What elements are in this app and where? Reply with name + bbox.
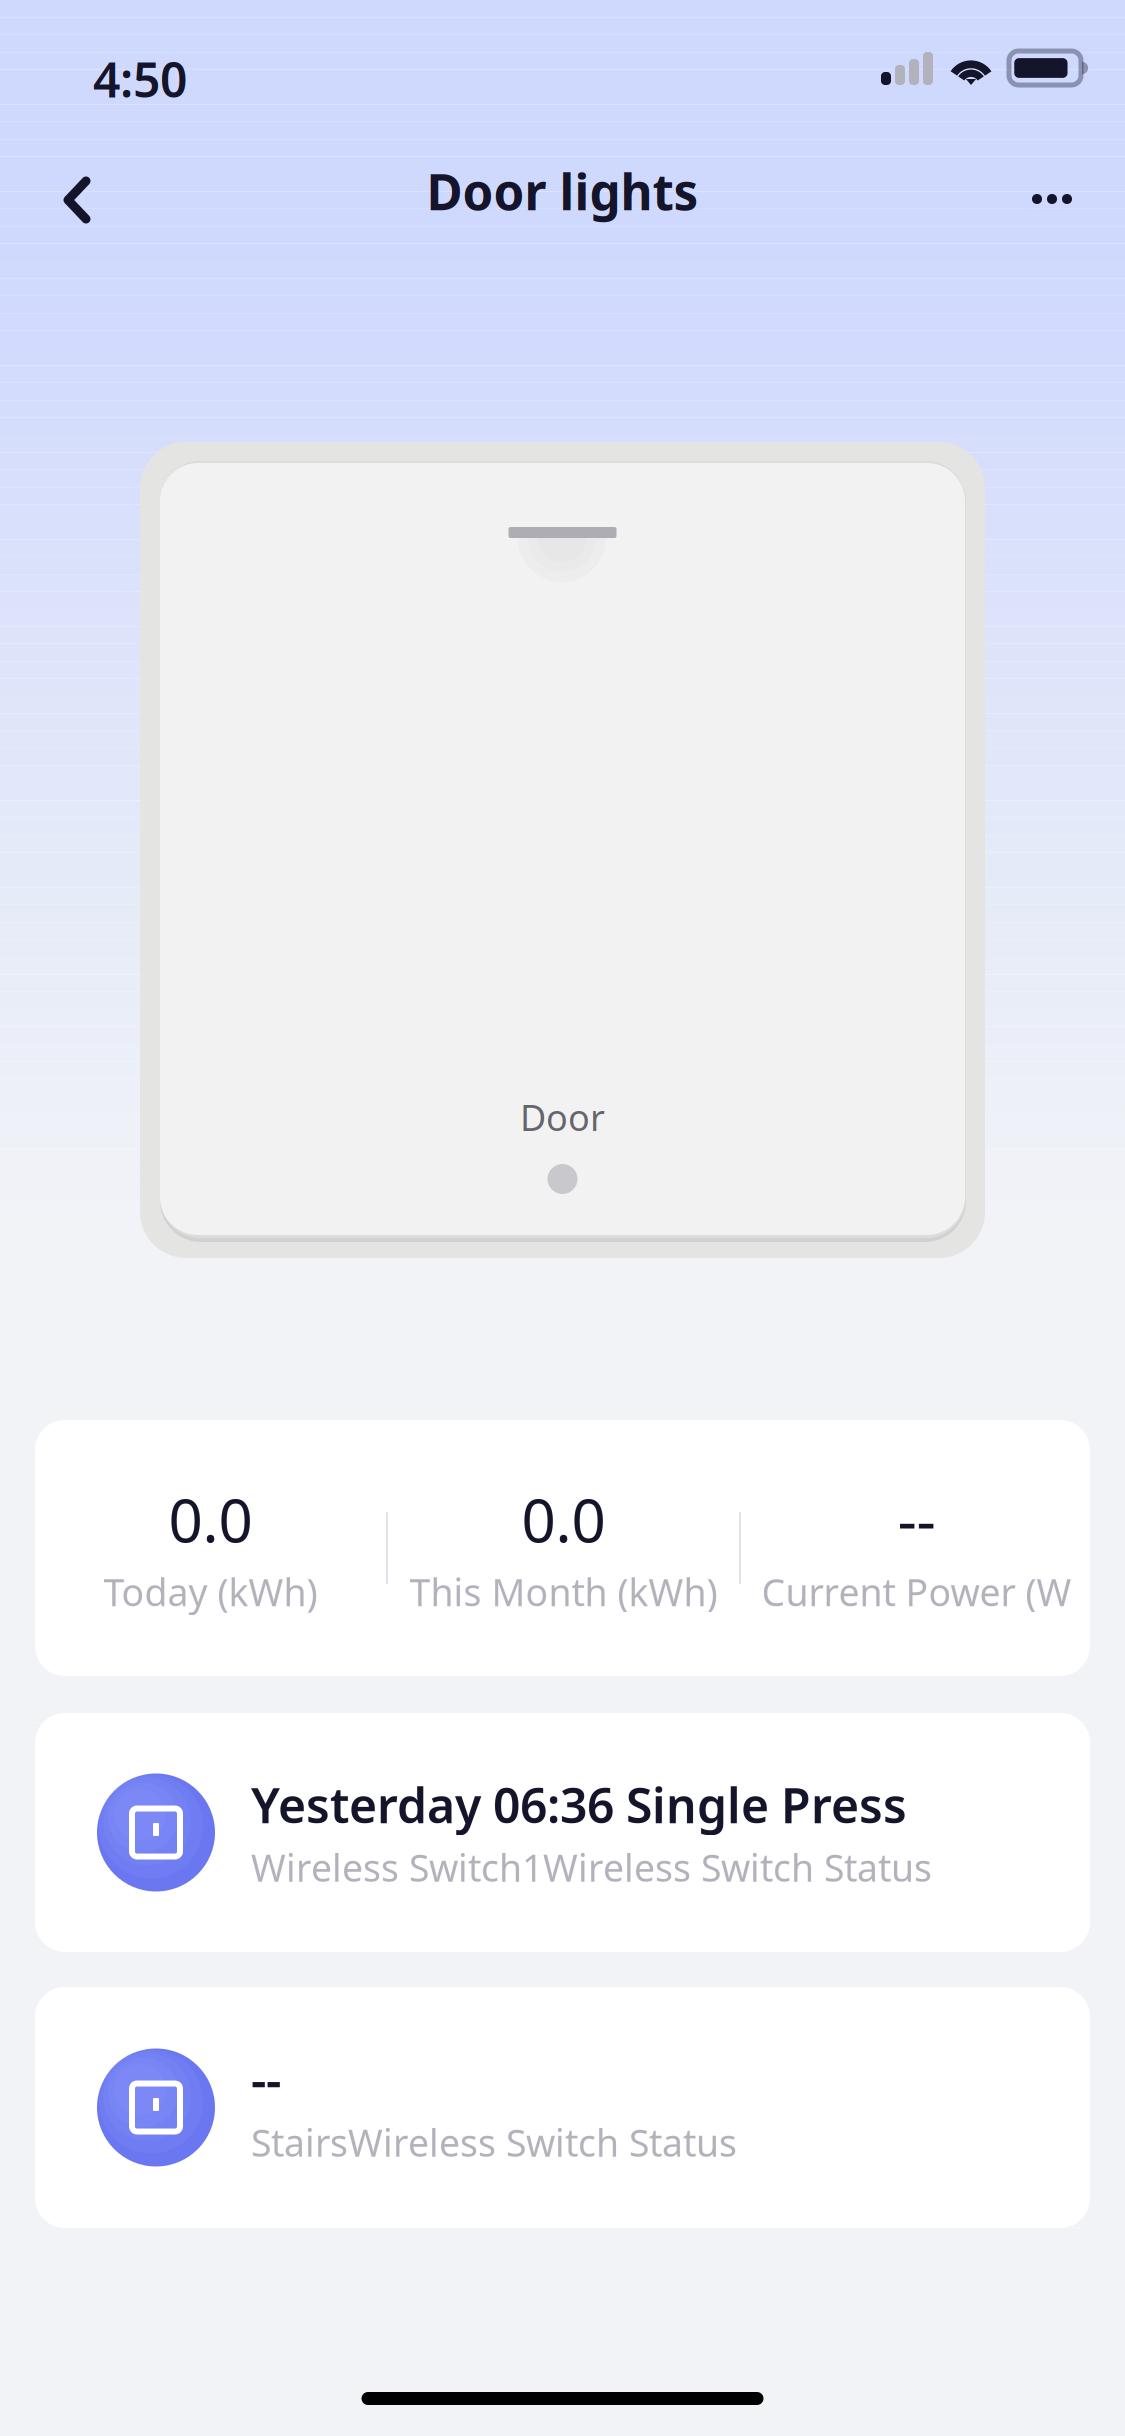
staticText: 0.0 bbox=[168, 1479, 252, 1559]
staticText: Door lights bbox=[426, 158, 698, 224]
staticText: Door bbox=[520, 1093, 605, 1141]
staticText: 0.0 bbox=[521, 1479, 605, 1559]
button[interactable]: Back bbox=[63, 154, 171, 246]
button[interactable]: More options bbox=[996, 153, 1108, 245]
staticText: Current Power (W bbox=[761, 1567, 1071, 1617]
staticText: StairsWireless Switch Status bbox=[251, 2118, 737, 2167]
staticText: -- bbox=[897, 1479, 935, 1559]
staticText: This Month (kWh) bbox=[409, 1567, 717, 1617]
staticText: -- bbox=[251, 2048, 281, 2111]
button[interactable]: Yesterday 06:36 Single Press bbox=[0, 1713, 1125, 1952]
staticText: Yesterday 06:36 Single Press bbox=[251, 1773, 907, 1836]
staticText: Today (kWh) bbox=[103, 1567, 317, 1617]
staticText: Wireless Switch1Wireless Switch Status bbox=[251, 1843, 932, 1892]
staticText: 4:50 bbox=[93, 47, 187, 111]
button[interactable]: -- bbox=[0, 1987, 1125, 2228]
